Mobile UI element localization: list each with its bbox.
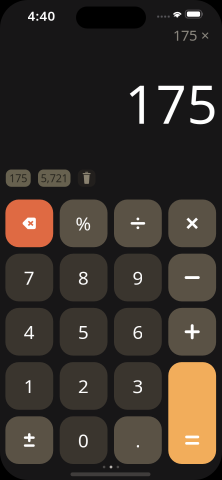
button[interactable]: Plus minus	[5, 416, 53, 464]
button[interactable]: Divide	[114, 199, 162, 247]
button[interactable]: 175	[6, 169, 31, 187]
button[interactable]: Delete	[5, 199, 53, 247]
button[interactable]: 0	[60, 416, 107, 464]
button[interactable]: 5,721	[38, 169, 70, 187]
staticText: 7	[24, 265, 35, 290]
button[interactable]: 8	[60, 254, 107, 301]
staticText: 6	[132, 319, 143, 344]
staticText: 4:40	[27, 7, 55, 24]
button[interactable]: Multiply	[168, 199, 216, 247]
staticText: 0	[78, 428, 89, 453]
staticText: 3	[132, 374, 143, 398]
button[interactable]: 3	[114, 362, 162, 410]
button[interactable]: .	[114, 416, 162, 464]
staticText: 175	[9, 171, 27, 185]
button[interactable]: Minus	[168, 254, 216, 301]
staticText: 5	[78, 319, 89, 344]
staticText: 9	[132, 265, 143, 290]
button[interactable]: 2	[60, 362, 107, 410]
button[interactable]: Plus	[168, 308, 216, 356]
staticText: 1	[24, 374, 35, 398]
button[interactable]: Equals	[168, 362, 216, 464]
button[interactable]: Clear history	[78, 169, 95, 187]
staticText: 175	[125, 68, 218, 138]
button[interactable]: 6	[114, 308, 162, 356]
button[interactable]: %	[60, 199, 107, 247]
staticText: .	[135, 428, 140, 453]
staticText: %	[76, 211, 92, 236]
staticText: 175 ×	[173, 25, 209, 45]
button[interactable]: 4	[5, 308, 53, 356]
button[interactable]: 5	[60, 308, 107, 356]
button[interactable]: 9	[114, 254, 162, 301]
button[interactable]: 7	[5, 254, 53, 301]
staticText: 2	[78, 374, 89, 398]
button[interactable]: 1	[5, 362, 53, 410]
staticText: 4	[24, 319, 35, 344]
staticText: 8	[78, 265, 89, 290]
staticText: 5,721	[41, 171, 68, 185]
